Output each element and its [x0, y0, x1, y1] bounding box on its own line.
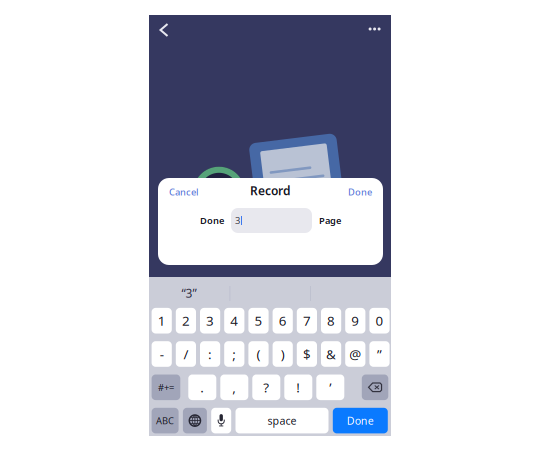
staticText: Done: [348, 186, 372, 198]
button[interactable]: !: [284, 374, 312, 400]
staticText: ABC: [156, 414, 174, 427]
staticText: 1: [158, 312, 166, 329]
staticText: #+=: [158, 381, 174, 393]
button[interactable]: ;: [224, 341, 244, 367]
staticText: 8: [327, 312, 335, 329]
button[interactable]: ABC: [152, 408, 179, 433]
staticText: &: [326, 345, 336, 363]
button[interactable]: ): [273, 341, 293, 367]
staticText: 0: [375, 312, 383, 329]
staticText: Done: [347, 413, 374, 428]
button[interactable]: Done: [340, 183, 372, 201]
staticText: -: [160, 345, 164, 363]
button[interactable]: (: [248, 341, 269, 367]
button[interactable]: ?: [252, 374, 280, 400]
button[interactable]: 6: [273, 308, 293, 333]
staticText: ?: [263, 378, 269, 396]
button[interactable]: space: [235, 408, 328, 433]
button[interactable]: -: [152, 341, 172, 367]
staticText: Done: [200, 214, 224, 227]
button[interactable]: Next keyboard: [183, 408, 207, 433]
staticText: $: [303, 345, 311, 363]
staticText: .: [200, 378, 204, 396]
button[interactable]: 8: [321, 308, 341, 333]
button[interactable]: 9: [345, 308, 365, 333]
button[interactable]: More options: [360, 14, 390, 44]
staticText: 5: [254, 312, 262, 329]
button[interactable]: .: [188, 374, 216, 400]
button[interactable]: /: [176, 341, 196, 367]
staticText: “3”: [181, 285, 196, 301]
button[interactable]: ,: [220, 374, 248, 400]
staticText: (: [256, 345, 260, 363]
staticText: /: [183, 345, 188, 363]
button[interactable]: 7: [297, 308, 317, 333]
button[interactable]: @: [345, 341, 365, 367]
staticText: 3: [206, 312, 214, 329]
staticText: ): [281, 345, 285, 363]
button[interactable]: 1: [152, 308, 172, 333]
button[interactable]: $: [297, 341, 317, 367]
button[interactable]: 4: [224, 308, 244, 333]
button[interactable]: 5: [248, 308, 269, 333]
staticText: Page: [319, 214, 341, 227]
button[interactable]: 2: [176, 308, 196, 333]
staticText: 9: [351, 312, 359, 329]
button[interactable]: Back: [149, 15, 179, 45]
staticText: :: [208, 345, 212, 363]
button[interactable]: Delete: [362, 374, 388, 400]
button[interactable]: #+=: [152, 374, 180, 400]
staticText: !: [296, 378, 300, 396]
button[interactable]: ’: [316, 374, 344, 400]
staticText: ;: [232, 345, 236, 363]
button[interactable]: Dictate: [211, 408, 231, 433]
button[interactable]: 0: [369, 308, 390, 333]
button[interactable]: :: [200, 341, 220, 367]
staticText: ’: [329, 378, 331, 396]
staticText: 4: [230, 312, 238, 329]
button[interactable]: Cancel: [169, 183, 203, 201]
staticText: 3: [235, 214, 240, 227]
staticText: space: [267, 413, 296, 428]
staticText: 2: [182, 312, 190, 329]
staticText: 6: [279, 312, 287, 329]
staticText: ,: [232, 378, 236, 396]
staticText: ”: [377, 345, 382, 363]
button[interactable]: Done: [333, 408, 388, 433]
button[interactable]: &: [321, 341, 341, 367]
staticText: 7: [303, 312, 311, 329]
button[interactable]: ”: [369, 341, 390, 367]
staticText: @: [349, 345, 361, 363]
staticText: Record: [250, 183, 291, 198]
staticText: Cancel: [169, 186, 199, 198]
button[interactable]: 3: [200, 308, 220, 333]
